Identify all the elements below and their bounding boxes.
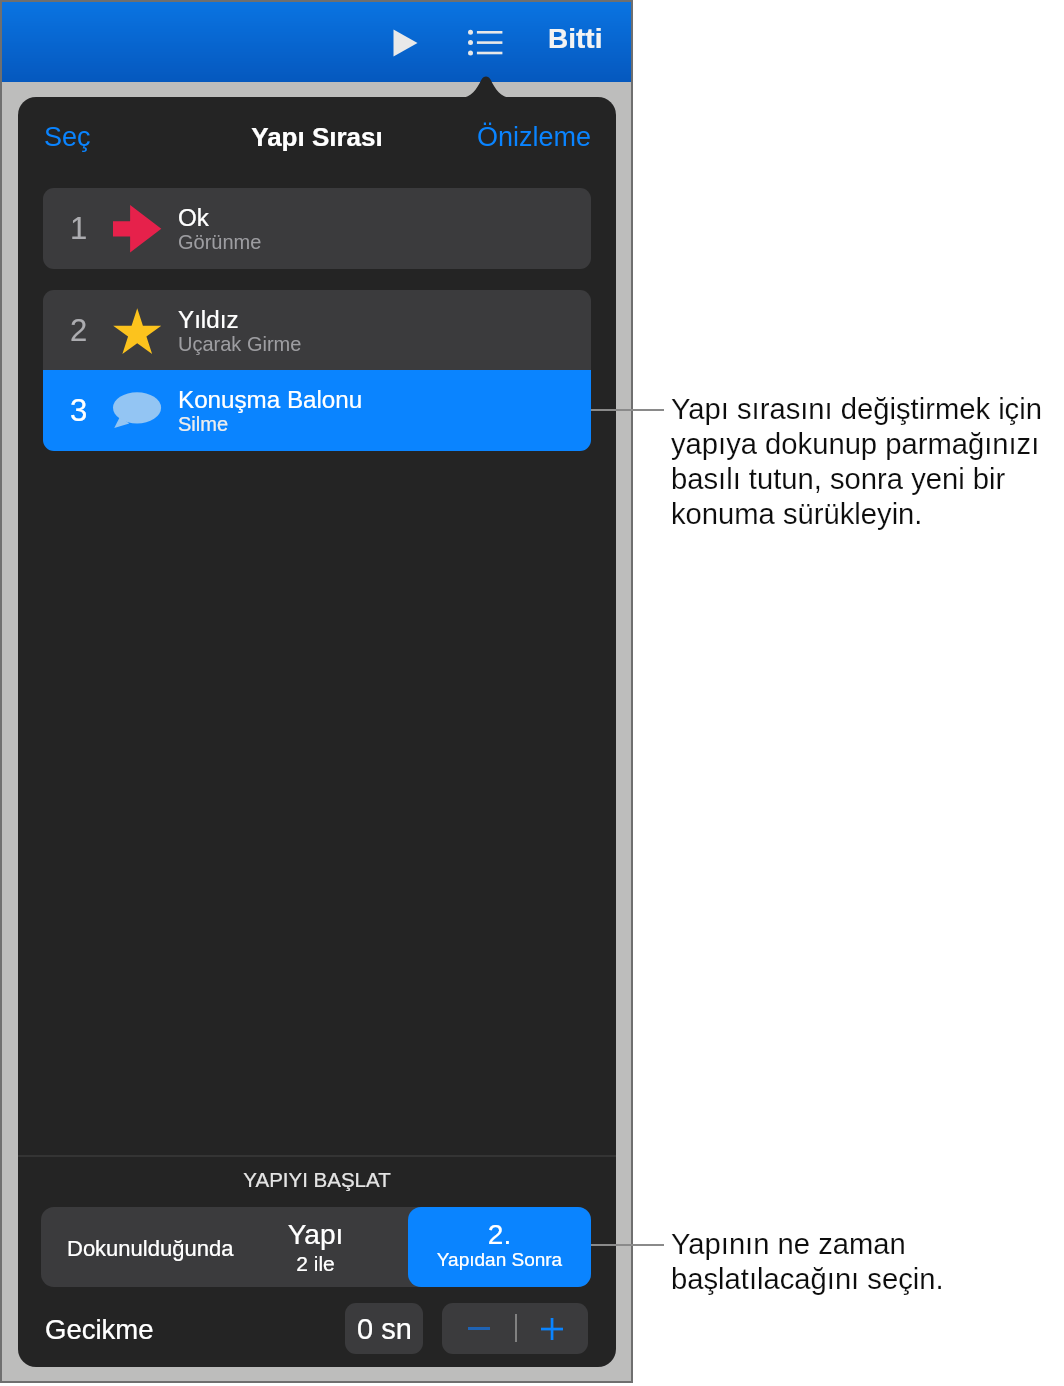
button[interactable]: Bitti bbox=[548, 23, 603, 54]
staticText: Silme bbox=[178, 413, 229, 435]
staticText: YAPIYI BAŞLAT bbox=[18, 1168, 616, 1191]
button[interactable]: 0 sn bbox=[345, 1303, 423, 1354]
button[interactable]: Increase delay bbox=[515, 1303, 588, 1354]
staticText: Görünme bbox=[178, 231, 262, 253]
staticText: 2 ile bbox=[243, 1252, 388, 1275]
button[interactable]: 2. bbox=[408, 1207, 591, 1287]
staticText: 0 sn bbox=[357, 1313, 412, 1345]
button[interactable]: Seç bbox=[44, 122, 91, 152]
button[interactable]: Decrease delay bbox=[442, 1303, 515, 1354]
staticText: Yapıdan Sonra bbox=[408, 1249, 591, 1270]
staticText: Uçarak Girme bbox=[178, 333, 302, 355]
button[interactable]: Önizleme bbox=[477, 122, 592, 152]
staticText: Yıldız bbox=[178, 306, 239, 333]
button[interactable]: Play presentation bbox=[385, 22, 427, 64]
button[interactable]: 2 bbox=[43, 290, 591, 371]
button[interactable]: 1 bbox=[43, 188, 591, 269]
button[interactable]: Yapı bbox=[243, 1207, 388, 1287]
staticText: Yapı bbox=[243, 1219, 388, 1250]
staticText: Yapı Sırası bbox=[18, 122, 616, 151]
staticText: Yapının ne zaman başlatılacağını seçin. bbox=[671, 1228, 1064, 1295]
staticText: 3 bbox=[70, 393, 88, 428]
staticText: Dokunulduğunda bbox=[67, 1236, 234, 1261]
button[interactable]: Dokunulduğunda bbox=[41, 1207, 408, 1287]
staticText: Gecikme bbox=[45, 1314, 154, 1345]
staticText: 1 bbox=[70, 211, 88, 246]
staticText: 2. bbox=[408, 1219, 591, 1250]
staticText: Ok bbox=[178, 204, 209, 231]
staticText: Yapı sırasını değiştirmek için yapıya do… bbox=[671, 393, 1064, 530]
button[interactable]: 3 bbox=[43, 370, 591, 451]
button[interactable]: Build order bbox=[464, 22, 512, 64]
staticText: 2 bbox=[70, 313, 88, 348]
staticText: Konuşma Balonu bbox=[178, 386, 363, 413]
